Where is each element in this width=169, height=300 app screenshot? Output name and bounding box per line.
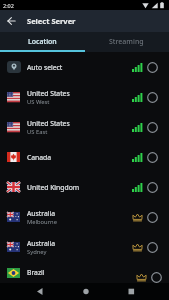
staticText: United Kingdom <box>27 183 80 192</box>
button[interactable]: United States <box>0 112 169 142</box>
staticText: United States <box>27 89 70 98</box>
button[interactable]: Canada <box>0 142 169 172</box>
button[interactable]: Auto select <box>0 52 169 82</box>
button[interactable]: Location <box>0 32 84 52</box>
button[interactable]: Streaming <box>84 32 169 52</box>
staticText: Sydney <box>27 248 47 256</box>
button[interactable] <box>57 283 113 300</box>
button[interactable]: United States <box>0 82 169 112</box>
button[interactable]: Brazil <box>0 262 169 283</box>
staticText: Australia <box>27 239 56 248</box>
staticText: Australia <box>27 209 56 218</box>
staticText: Auto select <box>27 63 63 72</box>
button[interactable] <box>113 283 169 300</box>
staticText: Brazil <box>27 268 45 277</box>
button[interactable] <box>0 283 57 300</box>
staticText: US East <box>27 128 48 136</box>
staticText: Select Server <box>27 16 76 26</box>
staticText: United States <box>27 119 70 128</box>
staticText: Melbourne <box>27 218 57 226</box>
button[interactable]: Australia <box>0 202 169 232</box>
staticText: Canada <box>27 153 52 162</box>
button[interactable]: United Kingdom <box>0 172 169 202</box>
button[interactable]: Australia <box>0 232 169 262</box>
staticText: Location <box>28 37 57 47</box>
staticText: 2:02 <box>3 2 14 9</box>
button[interactable] <box>0 10 22 32</box>
staticText: US West <box>27 98 50 106</box>
staticText: Streaming <box>109 37 144 47</box>
